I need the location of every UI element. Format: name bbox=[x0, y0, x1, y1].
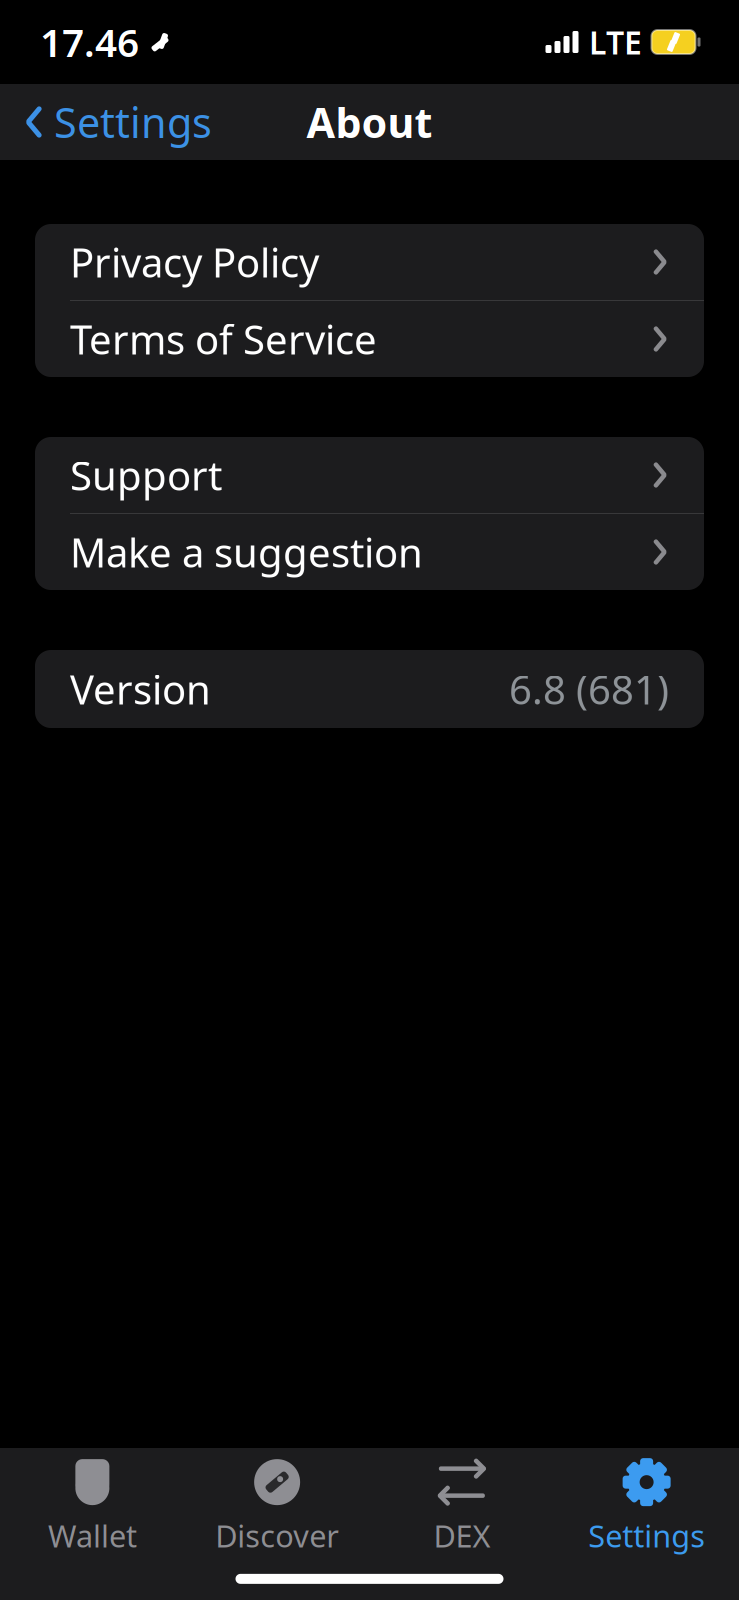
staticText: Support bbox=[70, 448, 222, 501]
staticText: Privacy Policy bbox=[70, 235, 319, 288]
staticText: 17.46 bbox=[40, 16, 139, 68]
button[interactable]: Privacy Policy bbox=[35, 224, 704, 300]
button[interactable]: Settings bbox=[0, 85, 228, 159]
button[interactable]: Support bbox=[35, 437, 704, 513]
button[interactable]: Discover bbox=[185, 1442, 370, 1566]
staticText: DEX bbox=[433, 1515, 490, 1556]
staticText: 6.8 (681) bbox=[509, 662, 669, 715]
button[interactable]: Make a suggestion bbox=[35, 514, 704, 590]
button[interactable]: Settings bbox=[554, 1442, 739, 1566]
staticText: Version bbox=[70, 662, 211, 715]
staticText: LTE bbox=[589, 21, 642, 63]
button[interactable]: DEX bbox=[369, 1442, 554, 1566]
staticText: Wallet bbox=[48, 1515, 137, 1556]
staticText: About bbox=[306, 95, 432, 149]
button[interactable]: Wallet bbox=[0, 1442, 185, 1566]
staticText: Settings bbox=[54, 95, 212, 149]
staticText: Make a suggestion bbox=[70, 525, 423, 578]
button[interactable]: Terms of Service bbox=[35, 301, 704, 377]
staticText: Discover bbox=[215, 1515, 339, 1556]
staticText: Terms of Service bbox=[70, 312, 377, 365]
staticText: Settings bbox=[588, 1515, 705, 1556]
